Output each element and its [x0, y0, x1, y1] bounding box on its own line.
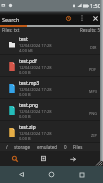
staticText: Files: txt [2, 27, 20, 33]
staticText: test.pdf [19, 58, 37, 65]
button[interactable]: Close search [89, 12, 102, 25]
other: Resize [96, 159, 103, 166]
button[interactable]: storage [11, 144, 34, 150]
staticText: 12/04/2024 17:28 [19, 87, 52, 92]
button[interactable]: 0 [61, 144, 70, 150]
staticText: 12/04/2024 17:28 [19, 43, 52, 48]
button[interactable]: test [0, 33, 103, 55]
button[interactable]: test.mp3 [0, 77, 103, 99]
button[interactable]: test.zip [0, 121, 103, 143]
staticText: 12/04/2024 17:28 [19, 65, 52, 70]
button[interactable]: Storage [29, 151, 58, 166]
button[interactable]: Files [70, 144, 86, 150]
staticText: test.mp3 [19, 80, 40, 87]
staticText: test.zip [19, 124, 36, 131]
button[interactable]: test.png [0, 99, 103, 121]
staticText: PDF [89, 67, 97, 72]
staticText: 0.00 B [19, 114, 31, 119]
button[interactable]: Back [13, 166, 30, 183]
staticText: test.png [19, 102, 39, 109]
button[interactable]: emulated [34, 144, 61, 150]
button[interactable]: / [3, 144, 11, 150]
staticText: PNG [89, 111, 97, 116]
staticText: DIR [90, 45, 97, 50]
button[interactable]: Home [43, 166, 60, 183]
staticText: 0.00 B [19, 70, 31, 75]
staticText: 0.00 B [19, 136, 31, 141]
staticText: Files [73, 144, 83, 150]
button[interactable]: Recents [73, 166, 90, 183]
button[interactable]: Search history [62, 12, 75, 25]
staticText: Results: 5 [80, 27, 101, 33]
staticText: MP3 [89, 89, 97, 94]
staticText: 0 [64, 144, 67, 150]
staticText: Search [2, 16, 20, 23]
button[interactable]: test.pdf [0, 55, 103, 77]
staticText: 12/04/2024 17:28 [19, 109, 52, 114]
button[interactable]: Search [0, 151, 29, 166]
staticText: test [19, 36, 28, 43]
button[interactable]: More options [76, 12, 88, 24]
button[interactable]: Forward [58, 151, 87, 166]
staticText: 12/04/2024 17:28 [19, 131, 52, 136]
staticText: ZIP [91, 133, 97, 138]
staticText: 1:50 [90, 2, 101, 9]
staticText: / [6, 144, 8, 150]
staticText: emulated [37, 144, 58, 150]
staticText: 4.00 kB [19, 48, 33, 53]
staticText: 0.00 B [19, 92, 31, 97]
staticText: storage [14, 144, 31, 150]
